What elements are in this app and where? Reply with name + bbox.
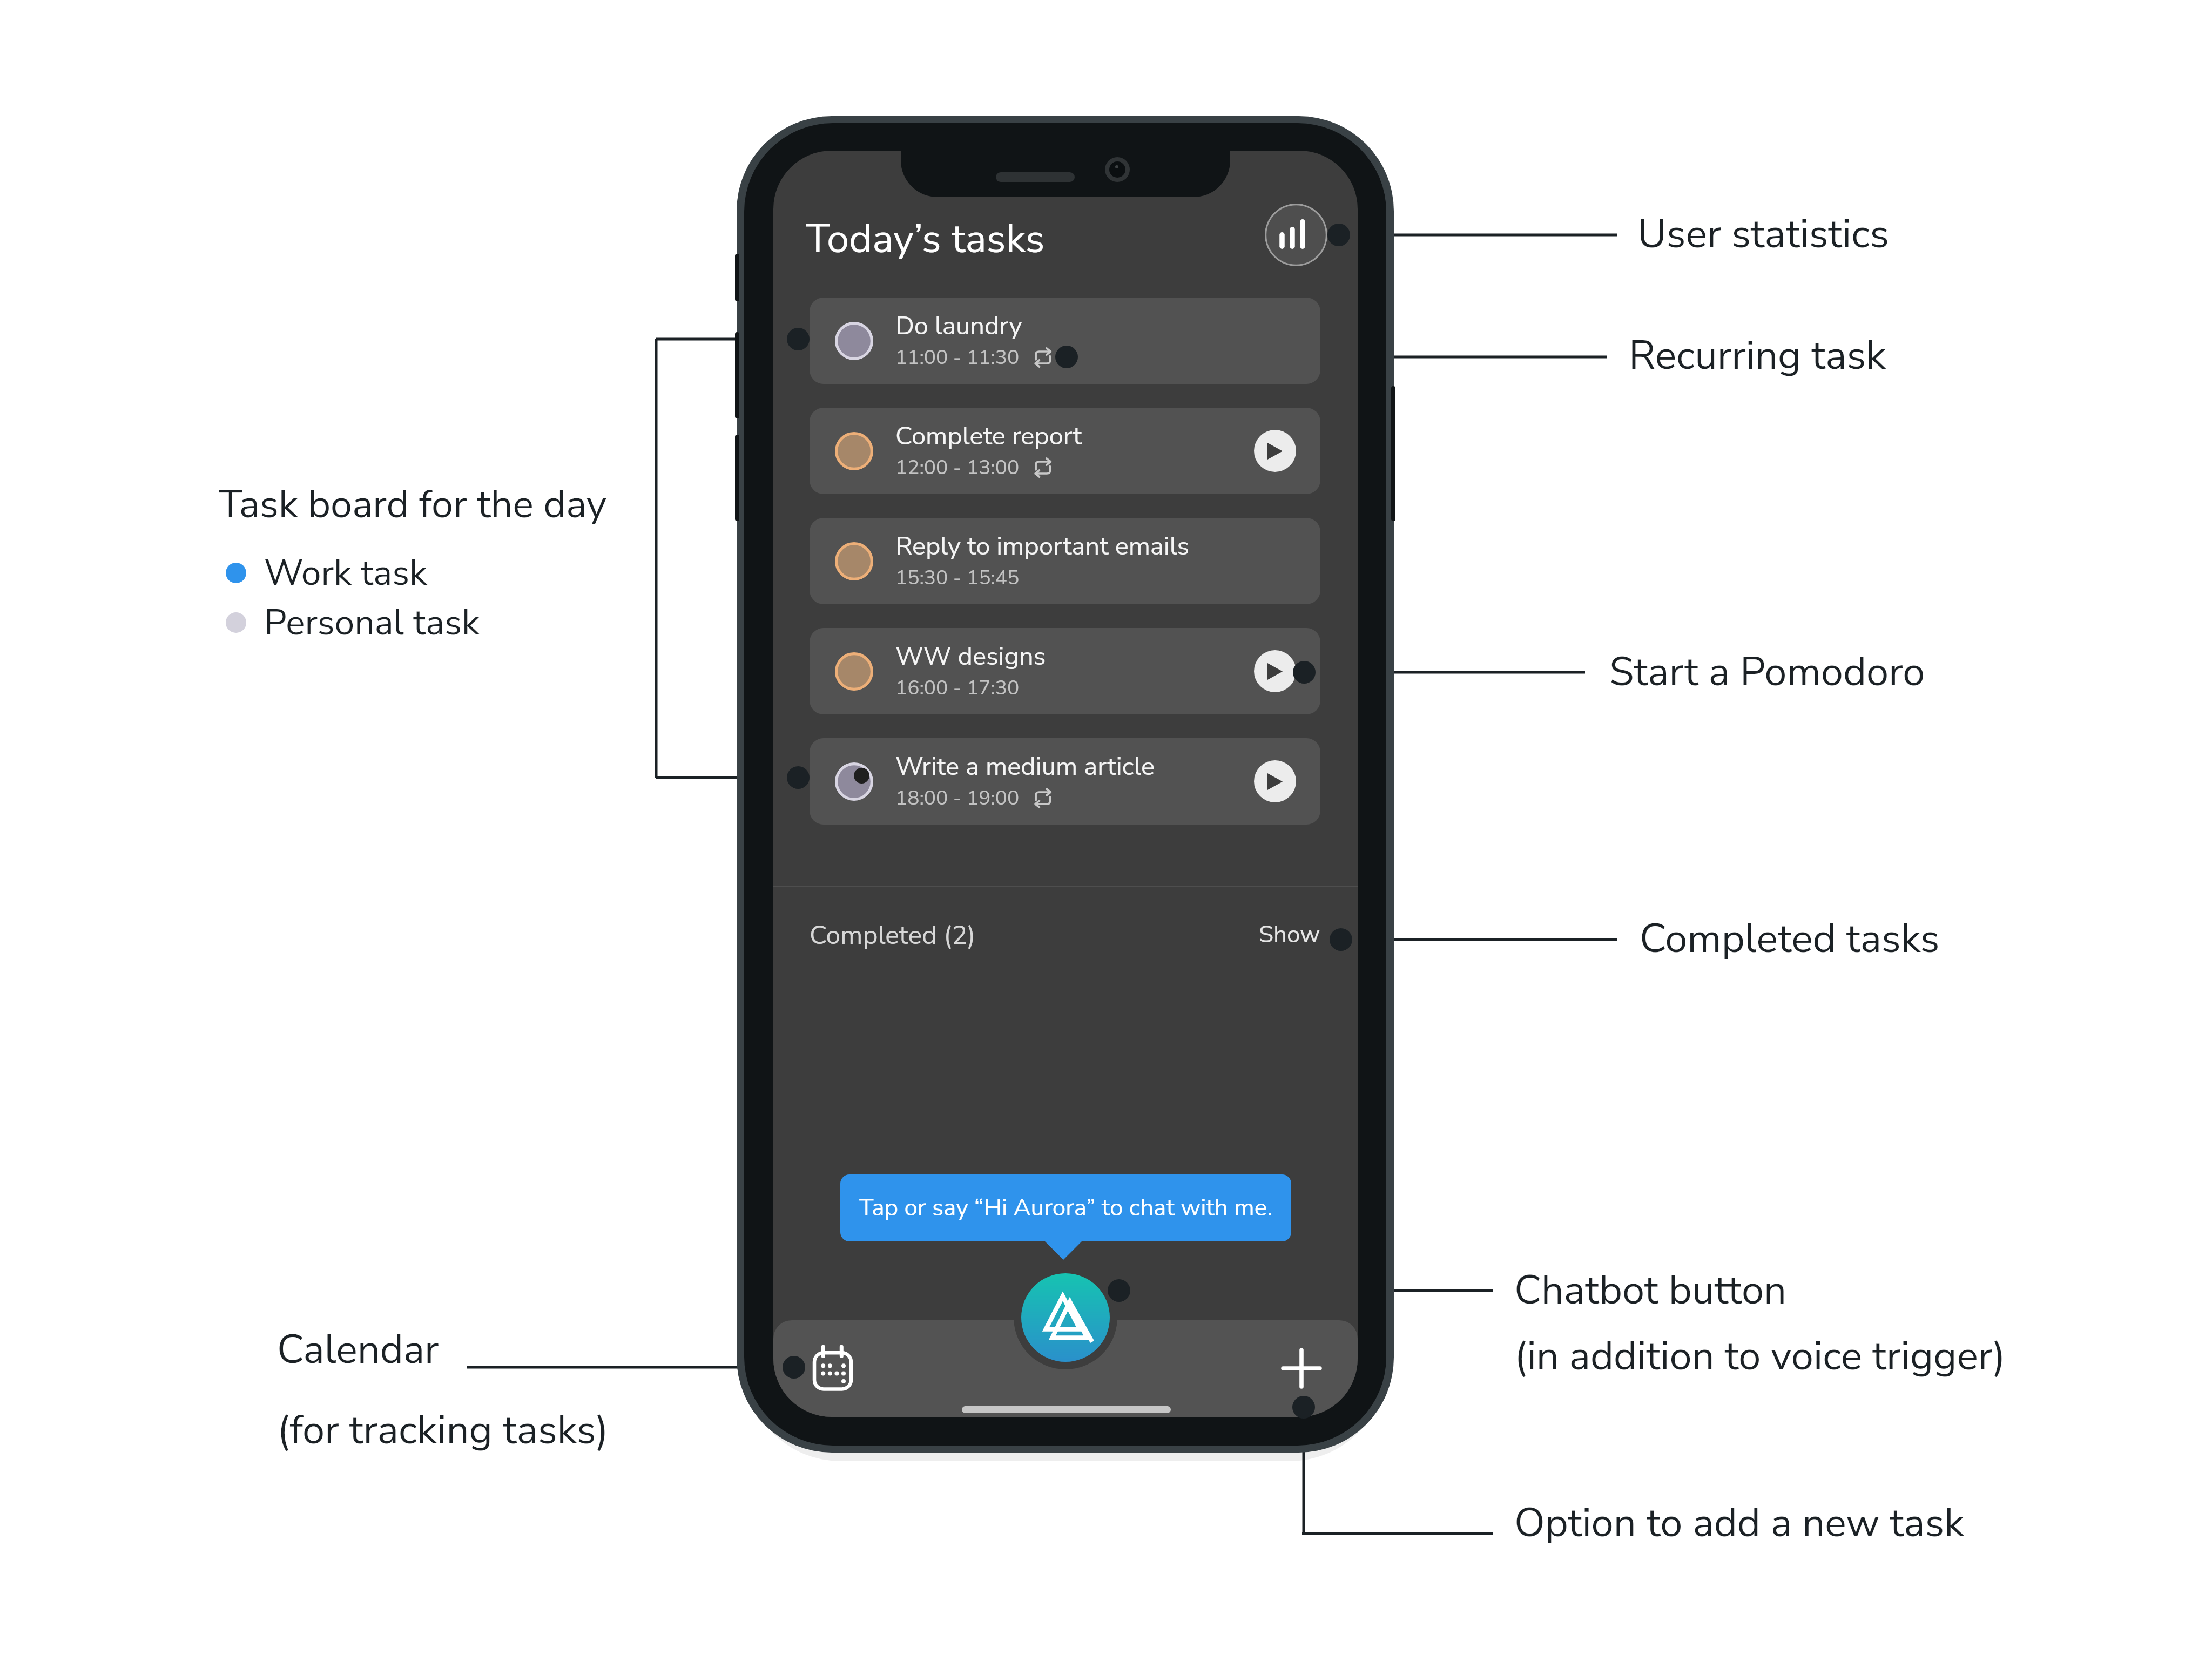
- button[interactable]: Calendar: [813, 1347, 853, 1390]
- staticText: Completed (2): [810, 917, 976, 953]
- staticText: Recurring task: [1629, 328, 1886, 383]
- button[interactable]: Write a medium article: [810, 738, 1320, 825]
- staticText: Show: [1259, 919, 1320, 951]
- staticText: Calendar: [277, 1322, 439, 1377]
- staticText: Complete report: [895, 418, 1082, 453]
- button[interactable]: Tap or say “Hi Aurora” to chat with me.: [840, 1174, 1291, 1241]
- staticText: 12:00 - 13:00: [895, 454, 1020, 481]
- staticText: 15:30 - 15:45: [895, 564, 1020, 591]
- button[interactable]: Start a Pomodoro: [1254, 760, 1296, 802]
- button[interactable]: Show: [1259, 919, 1320, 951]
- staticText: (in addition to voice trigger): [1514, 1329, 2006, 1383]
- staticText: 11:00 - 11:30: [895, 344, 1020, 371]
- staticText: Option to add a new task: [1514, 1496, 1965, 1550]
- button[interactable]: Complete report: [810, 408, 1320, 494]
- button[interactable]: Option to add a new task: [1281, 1348, 1322, 1389]
- staticText: Reply to important emails: [895, 529, 1190, 563]
- staticText: Write a medium article: [895, 749, 1155, 784]
- button[interactable]: Completed (2): [810, 917, 976, 953]
- button[interactable]: Start a Pomodoro: [1254, 430, 1296, 472]
- staticText: User statistics: [1637, 207, 1889, 261]
- staticText: Completed tasks: [1640, 911, 1940, 966]
- button[interactable]: Do laundry: [810, 298, 1320, 384]
- staticText: 18:00 - 19:00: [895, 785, 1020, 812]
- staticText: (for tracking tasks): [277, 1403, 609, 1457]
- staticText: Task board for the day: [219, 478, 607, 531]
- button[interactable]: User statistics: [1265, 204, 1327, 266]
- button[interactable]: Start a Pomodoro: [1254, 650, 1296, 692]
- button[interactable]: WW designs: [810, 628, 1320, 714]
- staticText: Work task: [264, 549, 427, 597]
- staticText: Today’s tasks: [806, 212, 1045, 266]
- staticText: WW designs: [895, 639, 1046, 673]
- staticText: Personal task: [264, 598, 480, 647]
- staticText: Start a Pomodoro: [1609, 645, 1925, 699]
- staticText: Tap or say “Hi Aurora” to chat with me.: [859, 1192, 1273, 1224]
- staticText: Do laundry: [895, 308, 1022, 343]
- staticText: 16:00 - 17:30: [895, 674, 1020, 701]
- button[interactable]: Chatbot: [1021, 1273, 1110, 1362]
- staticText: Chatbot button: [1514, 1263, 1787, 1318]
- button[interactable]: Reply to important emails: [810, 518, 1320, 604]
